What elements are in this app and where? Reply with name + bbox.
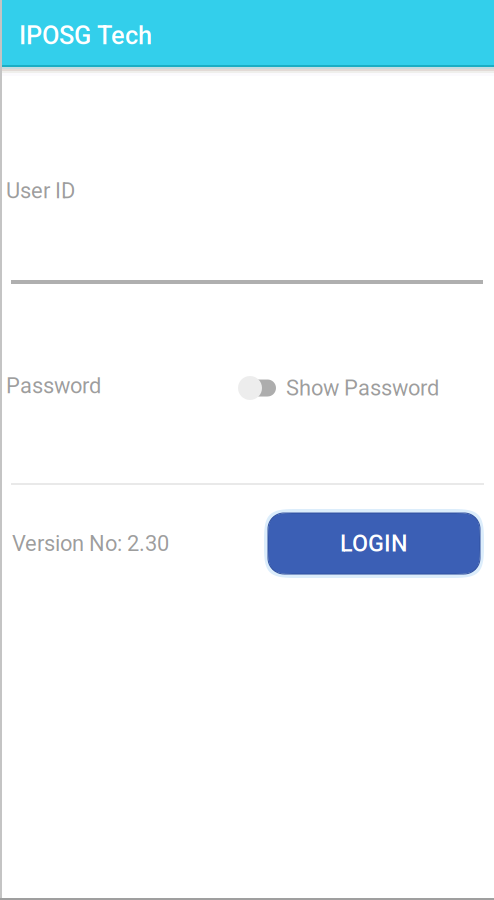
button[interactable]: LOGIN (264, 509, 484, 578)
staticText: IPOSG Tech (19, 21, 152, 50)
button[interactable]: Show Password (238, 368, 482, 408)
button[interactable]: User ID (0, 176, 494, 284)
staticText: Password (6, 373, 101, 399)
staticText: LOGIN (340, 530, 408, 557)
staticText: Version No: 2.30 (12, 531, 169, 556)
staticText: Show Password (286, 375, 439, 401)
button[interactable]: Password (0, 371, 494, 485)
staticText: User ID (6, 178, 75, 204)
